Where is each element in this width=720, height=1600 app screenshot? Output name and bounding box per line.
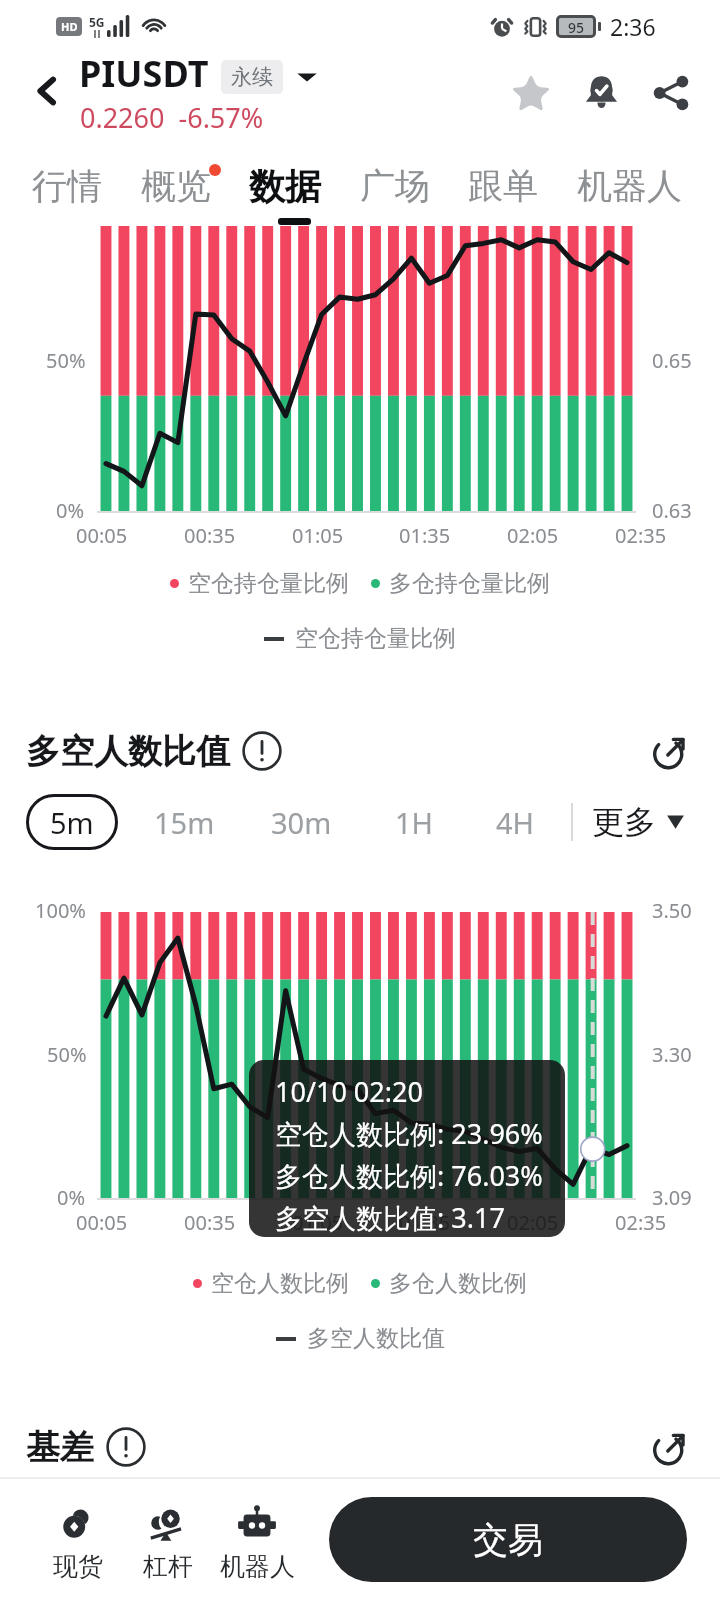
button[interactable]: Open full screen: [644, 1420, 698, 1474]
button[interactable]: 更多: [592, 794, 695, 850]
staticText: 机器人: [577, 164, 682, 208]
staticText: 00:05: [76, 1209, 128, 1236]
staticText: 基差: [26, 1426, 94, 1469]
staticText: 0.65: [652, 347, 692, 374]
staticText: 多空人数比值: [26, 730, 230, 773]
staticText: 多空人数比值: 3.17: [275, 1199, 505, 1236]
staticText: 更多: [592, 802, 656, 842]
staticText: 3.30: [652, 1041, 692, 1068]
staticText: 跟单: [468, 164, 538, 208]
staticText: 0%: [57, 1184, 86, 1211]
staticText: 空仓人数比例: [211, 1269, 349, 1298]
staticText: 01:35: [399, 522, 451, 549]
staticText: 广场: [360, 164, 430, 208]
button[interactable]: 数据: [249, 164, 321, 209]
button[interactable]: 1H: [381, 794, 448, 850]
button[interactable]: Share: [636, 58, 706, 128]
staticText: 00:35: [184, 1209, 236, 1236]
staticText: 15m: [154, 803, 215, 842]
staticText: 100%: [35, 897, 86, 924]
staticText: 02:35: [615, 522, 667, 549]
staticText: 概览: [141, 164, 211, 208]
staticText: 杠杆: [143, 1551, 193, 1582]
staticText: 50%: [46, 347, 86, 374]
staticText: 现货: [53, 1551, 103, 1582]
staticText: 10/10 02:20: [275, 1073, 423, 1110]
staticText: 行情: [32, 164, 102, 208]
button[interactable]: 概览: [141, 164, 211, 208]
button[interactable]: 杠杆: [123, 1502, 213, 1582]
staticText: 空仓人数比例: 23.96%: [275, 1115, 543, 1152]
button[interactable]: 交易: [329, 1497, 687, 1582]
staticText: HD: [61, 19, 78, 34]
staticText: PIUSDT: [79, 49, 209, 98]
button[interactable]: 广场: [360, 164, 430, 208]
button[interactable]: Select contract: [293, 63, 321, 91]
staticText: 多仓人数比例: [389, 1269, 527, 1298]
staticText: 01:05: [292, 522, 344, 549]
button[interactable]: 永续: [221, 60, 283, 94]
staticText: 永续: [231, 64, 273, 90]
staticText: 空仓持仓量比例: [295, 624, 456, 653]
staticText: 02:05: [507, 522, 559, 549]
button[interactable]: Alerts: [566, 58, 636, 128]
staticText: 00:35: [184, 522, 236, 549]
button[interactable]: 5m: [26, 794, 118, 850]
button[interactable]: Back: [19, 63, 75, 119]
staticText: 5m: [50, 803, 94, 842]
button[interactable]: Open full screen: [644, 724, 698, 778]
staticText: 3.09: [652, 1184, 692, 1211]
staticText: 多空人数比值: [307, 1324, 445, 1353]
staticText: 多仓人数比例: 76.03%: [275, 1157, 543, 1194]
button[interactable]: 30m: [257, 794, 346, 850]
staticText: 2:36: [610, 11, 656, 42]
staticText: 02:35: [615, 1209, 667, 1236]
button[interactable]: Info: [104, 1425, 148, 1469]
staticText: 交易: [473, 1518, 543, 1562]
button[interactable]: 15m: [140, 794, 229, 850]
button[interactable]: 现货: [33, 1502, 123, 1582]
staticText: 4H: [496, 803, 535, 842]
staticText: 95: [568, 18, 585, 35]
staticText: 30m: [271, 803, 332, 842]
staticText: 00:05: [76, 522, 128, 549]
staticText: 50%: [47, 1041, 87, 1068]
staticText: 01:05: [292, 1209, 344, 1236]
button[interactable]: 行情: [32, 164, 102, 208]
staticText: 01:35: [399, 1209, 451, 1236]
staticText: 机器人: [220, 1551, 295, 1582]
staticText: 1H: [395, 803, 434, 842]
staticText: 0.63: [652, 497, 692, 524]
staticText: 数据: [249, 164, 321, 209]
button[interactable]: 4H: [482, 794, 549, 850]
staticText: 5G: [89, 14, 105, 30]
staticText: 空仓持仓量比例: [188, 569, 349, 598]
staticText: 0.2260 -6.57%: [80, 99, 264, 136]
staticText: 0%: [56, 497, 85, 524]
button[interactable]: 跟单: [468, 164, 538, 208]
button[interactable]: Favourite: [496, 58, 566, 128]
staticText: 02:05: [507, 1209, 559, 1236]
button[interactable]: 机器人: [577, 164, 682, 208]
staticText: 多仓持仓量比例: [389, 569, 550, 598]
staticText: 3.50: [652, 897, 692, 924]
button[interactable]: 机器人: [212, 1502, 302, 1582]
button[interactable]: Info: [240, 729, 284, 773]
